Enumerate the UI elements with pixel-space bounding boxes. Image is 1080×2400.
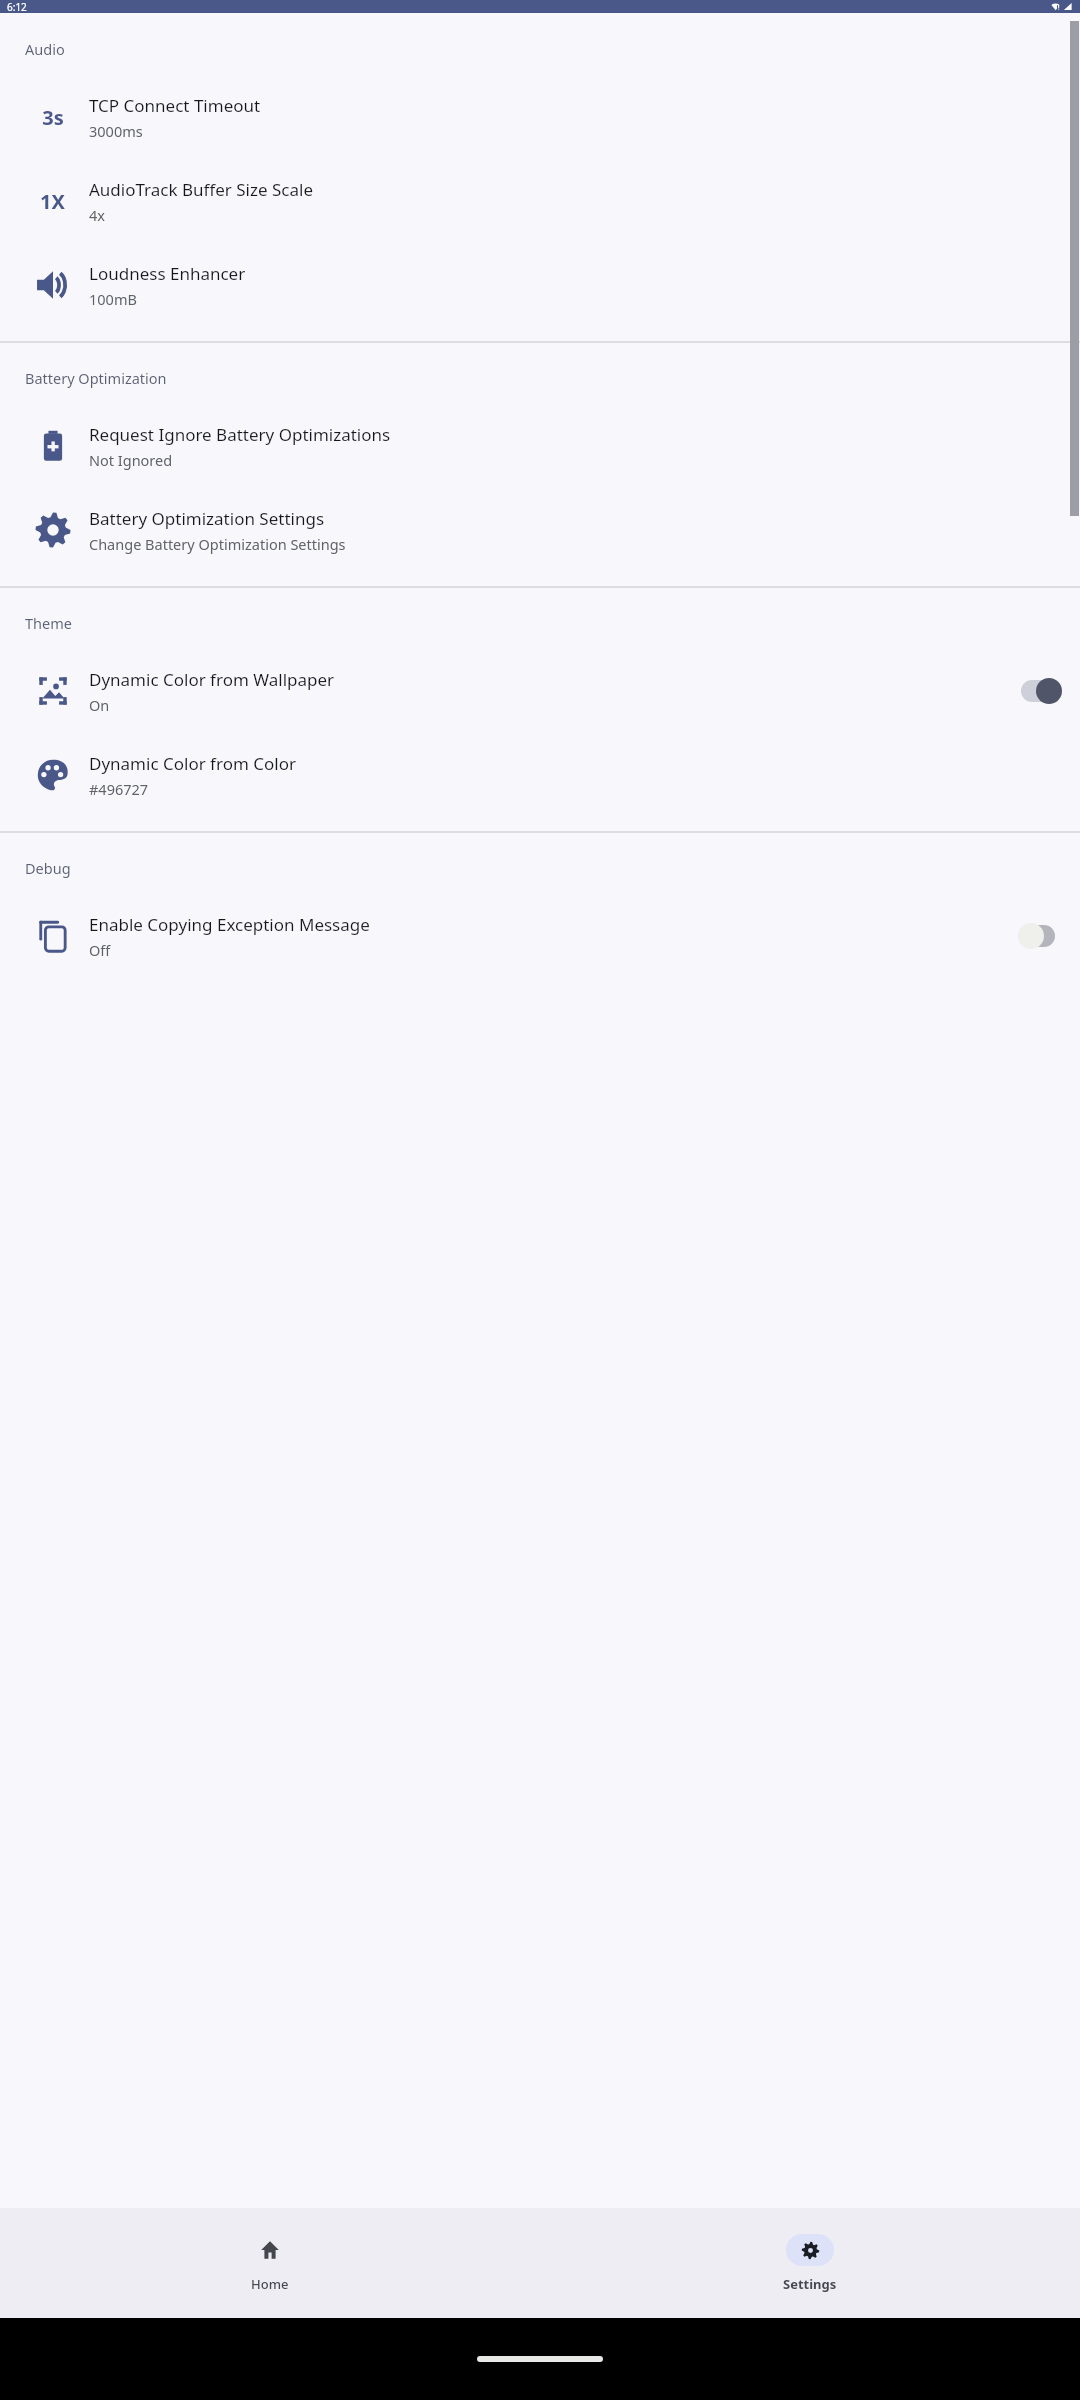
staticText: 6:12 bbox=[7, 0, 27, 13]
staticText: On bbox=[89, 695, 110, 715]
staticText: Enable Copying Exception Message bbox=[89, 913, 370, 936]
staticText: 3s bbox=[42, 104, 64, 131]
button[interactable]: Home bbox=[0, 2208, 540, 2318]
staticText: 4x bbox=[89, 205, 105, 225]
staticText: 1X bbox=[40, 188, 65, 215]
button[interactable]: Battery Optimization Settings bbox=[0, 488, 1080, 572]
button[interactable]: 1X bbox=[0, 159, 1080, 243]
staticText: Theme bbox=[25, 613, 72, 633]
staticText: #496727 bbox=[89, 779, 149, 799]
staticText: Audio bbox=[25, 39, 65, 59]
staticText: Not Ignored bbox=[89, 450, 173, 470]
button[interactable]: Toggle off bbox=[1018, 923, 1062, 949]
staticText: Dynamic Color from Color bbox=[89, 752, 296, 775]
staticText: Settings bbox=[783, 2275, 837, 2293]
staticText: Battery Optimization bbox=[25, 368, 167, 388]
staticText: Dynamic Color from Wallpaper bbox=[89, 668, 335, 691]
button[interactable]: Dynamic Color from Color bbox=[0, 733, 1080, 817]
button[interactable]: Settings bbox=[540, 2208, 1080, 2318]
button[interactable]: Request Ignore Battery Optimizations bbox=[0, 404, 1080, 488]
staticText: Change Battery Optimization Settings bbox=[89, 534, 346, 554]
staticText: Loudness Enhancer bbox=[89, 262, 246, 285]
staticText: AudioTrack Buffer Size Scale bbox=[89, 178, 313, 201]
staticText: Request Ignore Battery Optimizations bbox=[89, 423, 391, 446]
button[interactable]: Toggle on bbox=[1018, 678, 1062, 704]
staticText: Home bbox=[251, 2275, 289, 2293]
button[interactable]: Dynamic Color from Wallpaper bbox=[0, 649, 1080, 733]
staticText: Battery Optimization Settings bbox=[89, 507, 325, 530]
staticText: TCP Connect Timeout bbox=[89, 94, 261, 117]
button[interactable]: 3s bbox=[0, 75, 1080, 159]
button[interactable]: Loudness Enhancer bbox=[0, 243, 1080, 327]
staticText: 100mB bbox=[89, 289, 137, 309]
staticText: 3000ms bbox=[89, 121, 143, 141]
button[interactable]: Enable Copying Exception Message bbox=[0, 894, 1080, 978]
staticText: Debug bbox=[25, 858, 71, 878]
staticText: Off bbox=[89, 940, 111, 960]
